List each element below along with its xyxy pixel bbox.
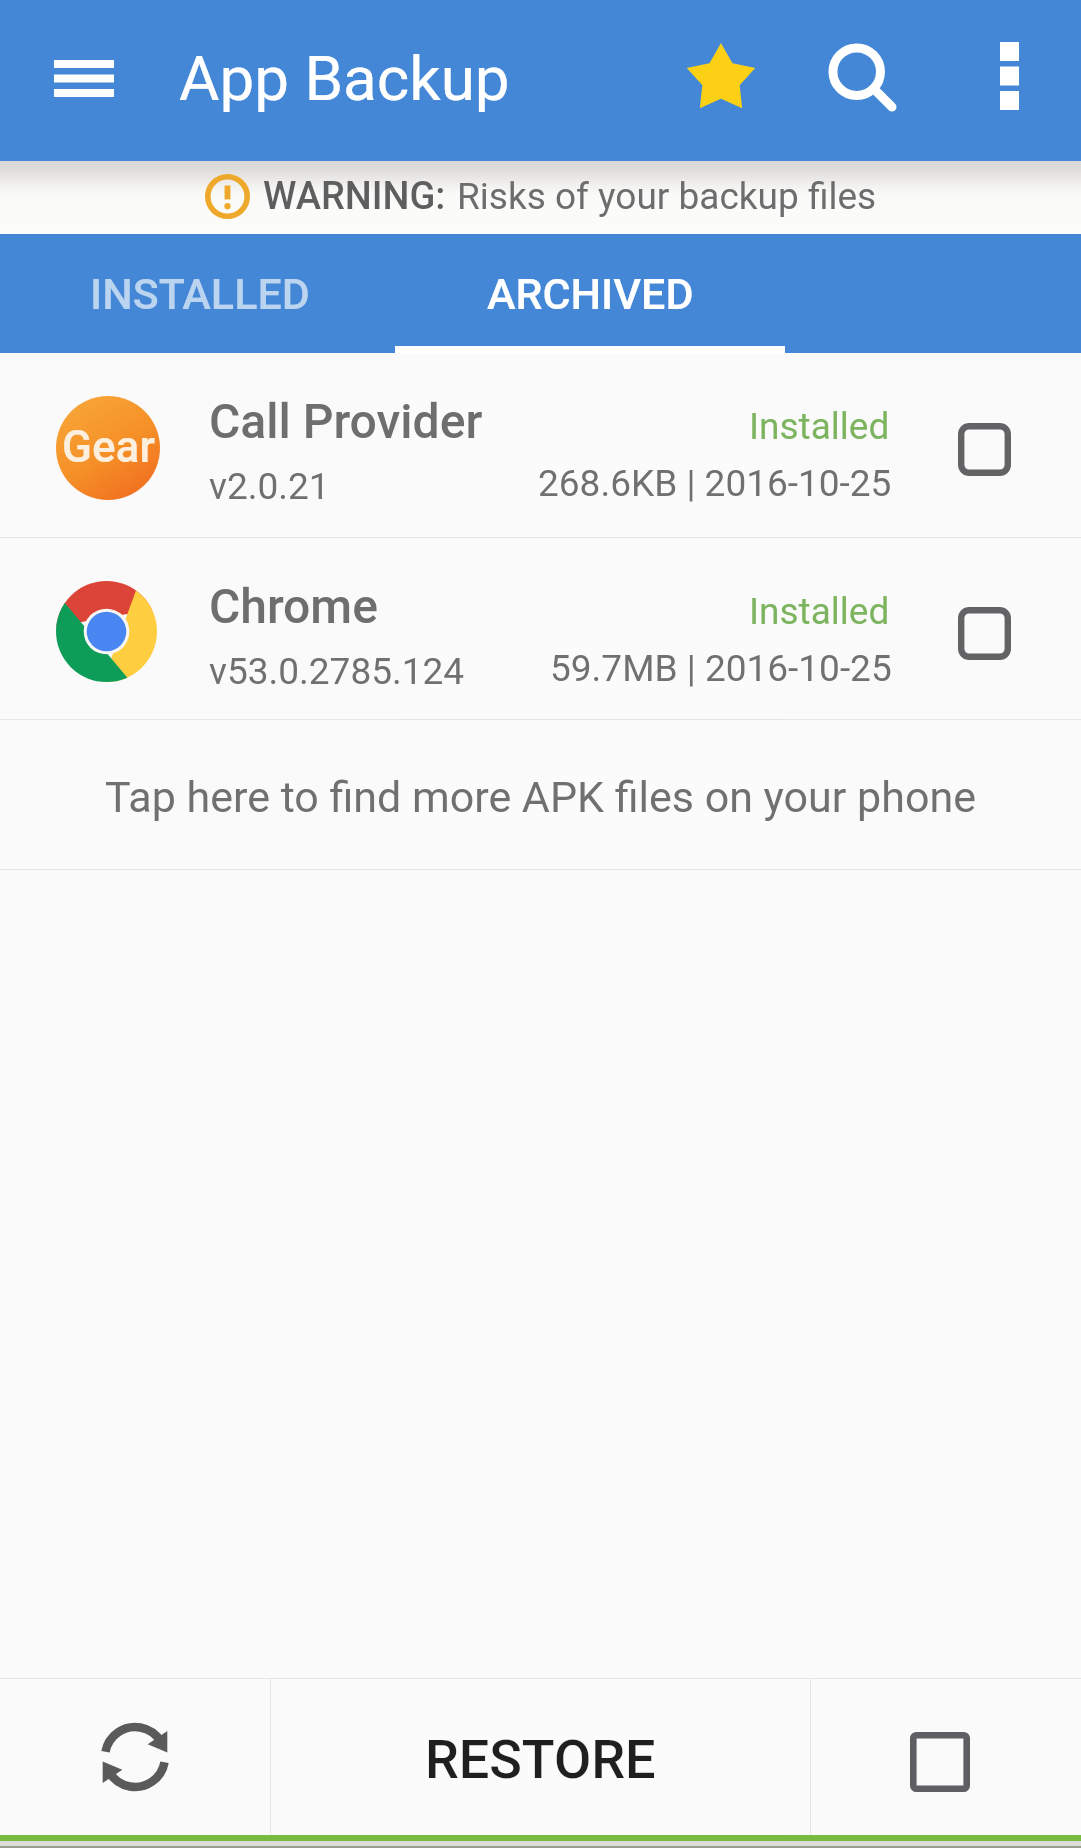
- button[interactable]: Select all: [811, 1679, 1081, 1835]
- button[interactable]: Select Chrome: [934, 583, 1034, 683]
- button[interactable]: More options: [954, 21, 1064, 131]
- staticText: ARCHIVED: [487, 269, 694, 319]
- staticText: Tap here to find more APK files on your …: [105, 772, 976, 822]
- button[interactable]: ARCHIVED: [395, 234, 785, 353]
- button[interactable]: Refresh: [0, 1679, 270, 1835]
- staticText: RESTORE: [425, 1728, 656, 1791]
- staticText: INSTALLED: [90, 269, 310, 319]
- staticText: Gear: [62, 421, 155, 473]
- button[interactable]: Tap here to find more APK files on your …: [0, 720, 1081, 869]
- staticText: v53.0.2785.124: [209, 650, 465, 693]
- staticText: 59.7MB | 2016-10-25: [550, 647, 892, 690]
- button[interactable]: Chrome: [0, 538, 1081, 719]
- staticText: Installed: [749, 405, 890, 448]
- button[interactable]: Search: [810, 25, 920, 135]
- button[interactable]: Select Call Provider: [934, 399, 1034, 499]
- button[interactable]: Gear: [0, 353, 1081, 537]
- staticText: Call Provider: [209, 393, 483, 449]
- button[interactable]: Favourites: [666, 22, 776, 132]
- button[interactable]: RESTORE: [271, 1679, 810, 1835]
- staticText: Risks of your backup files: [457, 175, 877, 218]
- staticText: App Backup: [179, 42, 510, 115]
- staticText: WARNING:: [263, 174, 446, 219]
- staticText: Chrome: [209, 578, 378, 634]
- button[interactable]: INSTALLED: [5, 234, 395, 353]
- button[interactable]: WARNING:: [0, 161, 1081, 234]
- staticText: Installed: [749, 590, 890, 633]
- staticText: 268.6KB | 2016-10-25: [538, 462, 892, 505]
- button[interactable]: Open navigation menu: [28, 19, 140, 137]
- staticText: v2.0.21: [209, 465, 330, 508]
